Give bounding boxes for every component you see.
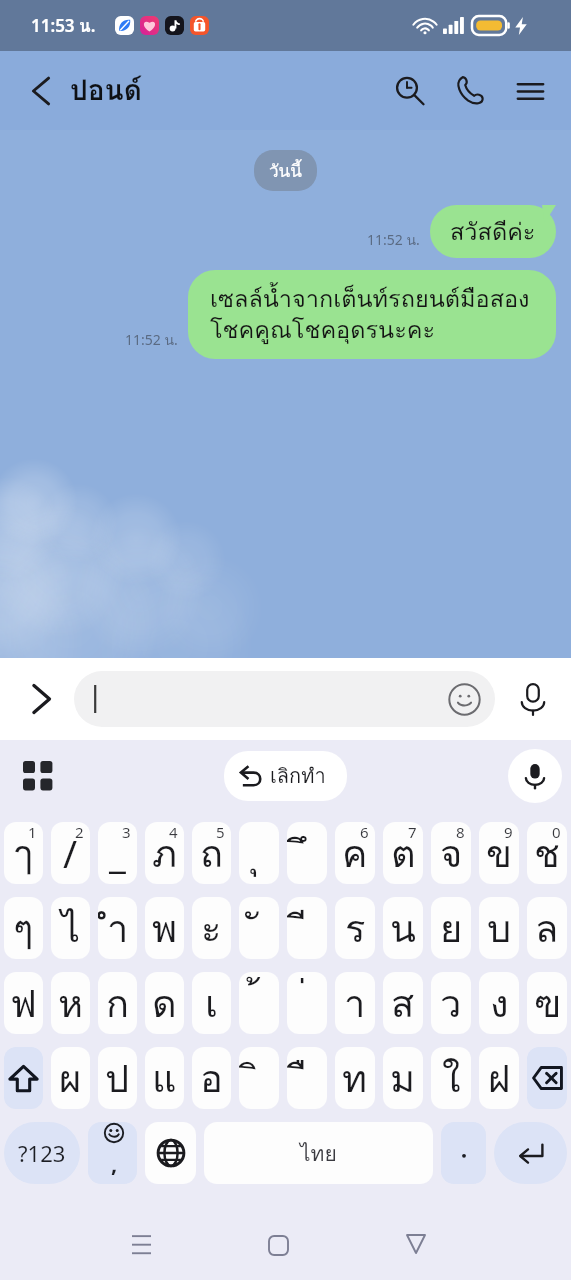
button[interactable]: ห (51, 972, 90, 1034)
staticText: ภ (152, 823, 178, 883)
button[interactable]: ท (335, 1047, 375, 1109)
button[interactable]: Change language (145, 1122, 196, 1184)
button[interactable]: ใ (431, 1047, 471, 1109)
button[interactable]: ต (383, 822, 423, 884)
button[interactable]: ี (287, 897, 327, 959)
button[interactable] (441, 1122, 486, 1184)
button[interactable]: Home (250, 1217, 306, 1273)
button[interactable]: น (383, 897, 423, 959)
button[interactable]: ป (98, 1047, 137, 1109)
button[interactable]: Back (20, 70, 62, 112)
button[interactable]: วันนี้ (254, 150, 317, 191)
button[interactable]: ก (98, 972, 137, 1034)
button[interactable]: Shift (4, 1047, 43, 1109)
button[interactable]: เซลล์น้ำจากเต็นท์รถยนต์มือสอง โชคคูณโชคอ… (188, 270, 556, 359)
button[interactable]: ิ (239, 1047, 279, 1109)
staticText: ง (490, 973, 509, 1033)
button[interactable]: More options (0, 658, 74, 740)
staticText: 11:52 น. (125, 329, 178, 351)
button[interactable]: สวัสดีค่ะ (430, 205, 556, 258)
button[interactable]: / (51, 822, 90, 884)
button[interactable]: ข (479, 822, 519, 884)
staticText: 9 (504, 822, 513, 842)
button[interactable]: , (88, 1122, 137, 1184)
button[interactable]: ่ (287, 972, 327, 1034)
button[interactable]: ุ (239, 822, 279, 884)
button[interactable]: ึ (287, 822, 327, 884)
staticText: 2 (75, 822, 84, 842)
button[interactable]: จ (431, 822, 471, 884)
staticText: จ (440, 823, 463, 883)
staticText: วันนี้ (269, 157, 302, 184)
button[interactable]: บ (479, 897, 519, 959)
button[interactable]: อ (192, 1047, 231, 1109)
button[interactable]: ้ (239, 972, 279, 1034)
button[interactable]: ๅ (4, 822, 43, 884)
staticText: ค (342, 823, 368, 883)
button[interactable]: ร (335, 897, 375, 959)
button[interactable]: ถ (192, 822, 231, 884)
button[interactable]: เ (192, 972, 231, 1034)
button[interactable]: ?123 (4, 1122, 80, 1184)
button[interactable]: ด (145, 972, 184, 1034)
staticText: _ (109, 827, 126, 879)
button[interactable]: ภ (145, 822, 184, 884)
button[interactable]: ย (431, 897, 471, 959)
button[interactable]: ะ (192, 897, 231, 959)
staticText: 1 (28, 822, 37, 842)
button[interactable]: Enter (494, 1122, 567, 1184)
button[interactable]: พ (145, 897, 184, 959)
staticText: 3 (122, 822, 131, 842)
button[interactable]: Menu (506, 67, 554, 115)
staticText: ด (152, 973, 177, 1033)
staticText: ฟ (10, 973, 37, 1033)
button[interactable]: Back (388, 1216, 444, 1272)
button[interactable]: Voice typing (508, 749, 562, 803)
staticText: ห (58, 973, 84, 1033)
button[interactable]: ำ (98, 897, 137, 959)
button[interactable]: ล (527, 897, 567, 959)
button[interactable]: ว (431, 972, 471, 1034)
button[interactable]: เลิกทำ (224, 751, 347, 801)
staticText: บ (487, 898, 512, 958)
staticText: ถ (200, 823, 224, 883)
staticText: 11:53 น. (31, 12, 96, 39)
button[interactable]: Emoji (74, 671, 495, 727)
staticText: ว (440, 973, 462, 1033)
button[interactable]: _ (98, 822, 137, 884)
button[interactable]: Switch keyboard (14, 752, 62, 800)
staticText: 0 (552, 822, 561, 842)
button[interactable]: ื (287, 1047, 327, 1109)
button[interactable]: Search (386, 67, 434, 115)
button[interactable]: ค (335, 822, 375, 884)
staticText: 4 (169, 822, 178, 842)
button[interactable]: ฃ (527, 972, 567, 1034)
button[interactable]: า (335, 972, 375, 1034)
button[interactable]: ช (527, 822, 567, 884)
button[interactable]: ม (383, 1047, 423, 1109)
staticText: ส (391, 973, 415, 1033)
staticText: / (63, 827, 78, 879)
button[interactable]: ไ (51, 897, 90, 959)
button[interactable]: Call (446, 67, 494, 115)
button[interactable]: ส (383, 972, 423, 1034)
button[interactable]: Emoji (443, 678, 485, 720)
button[interactable]: Voice message (495, 658, 571, 740)
staticText: ปอนด์ (70, 68, 142, 113)
button[interactable]: ง (479, 972, 519, 1034)
staticText: ม (390, 1048, 416, 1108)
button[interactable]: ไทย (204, 1122, 433, 1184)
button[interactable]: Recents (113, 1216, 169, 1272)
staticText: , (111, 1148, 118, 1178)
staticText: แ (152, 1048, 177, 1108)
staticText: พ (152, 898, 178, 958)
button[interactable]: ั (239, 897, 279, 959)
button[interactable]: แ (145, 1047, 184, 1109)
staticText: 8 (456, 822, 465, 842)
button[interactable]: ฝ (479, 1047, 519, 1109)
button[interactable]: ผ (51, 1047, 90, 1109)
button[interactable]: Backspace (527, 1047, 567, 1109)
button[interactable]: ๆ (4, 897, 43, 959)
staticText: า (344, 973, 366, 1033)
button[interactable]: ฟ (4, 972, 43, 1034)
